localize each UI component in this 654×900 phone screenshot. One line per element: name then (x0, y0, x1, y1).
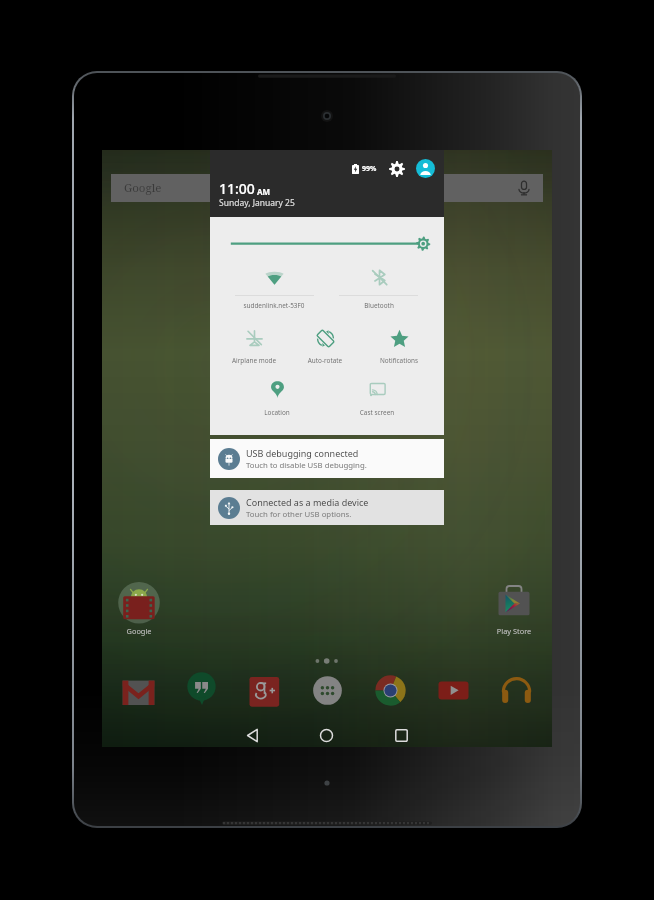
button[interactable]: Voice search (515, 179, 533, 197)
staticText: Play Store (493, 626, 535, 636)
button[interactable]: Auto-rotate (283, 329, 367, 373)
staticText: Google (118, 626, 160, 636)
staticText: suddenlink.net-53F0 (232, 301, 316, 310)
button[interactable]: User (416, 159, 435, 178)
staticText: Google (124, 180, 162, 196)
staticText: AM (257, 186, 271, 197)
staticText: USB debugging connected (246, 447, 359, 459)
button[interactable]: All apps (307, 670, 347, 710)
button[interactable]: Notifications (357, 329, 441, 373)
button[interactable]: Google (111, 174, 543, 202)
staticText: Sunday, January 25 (219, 197, 295, 209)
staticText: 99% (362, 164, 377, 174)
button[interactable]: Back (232, 714, 274, 756)
button[interactable]: suddenlink.net-53F0 (232, 268, 316, 318)
button[interactable]: Bluetooth (337, 268, 421, 318)
button[interactable]: Recent apps (380, 714, 422, 756)
button[interactable]: Home (305, 714, 347, 756)
button[interactable]: Settings (388, 160, 406, 178)
button[interactable]: Hangouts (181, 668, 221, 708)
button[interactable]: Google (118, 582, 160, 634)
staticText: Touch for other USB options. (246, 509, 352, 520)
staticText: 11:00 (219, 179, 255, 198)
staticText: Bluetooth (337, 301, 421, 310)
button[interactable]: Play Music (496, 670, 536, 710)
staticText: Location (235, 408, 319, 417)
staticText: Connected as a media device (246, 496, 369, 508)
staticText: Airplane mode (212, 356, 296, 365)
staticText: Cast screen (335, 408, 419, 417)
button[interactable]: Chrome (370, 670, 410, 710)
button[interactable]: Google Plus (244, 670, 284, 710)
button[interactable]: Airplane mode (212, 329, 296, 373)
staticText: Notifications (357, 356, 441, 365)
button[interactable]: Play Store (493, 582, 535, 634)
button[interactable]: USB debugging connected (210, 439, 444, 478)
staticText: Touch to disable USB debugging. (246, 460, 367, 471)
button[interactable]: YouTube (433, 670, 473, 710)
button[interactable]: Cast screen (335, 380, 419, 425)
button[interactable]: Location (235, 380, 319, 425)
staticText: Auto-rotate (283, 356, 367, 365)
button[interactable]: Gmail (118, 670, 158, 710)
button[interactable]: Connected as a media device (210, 490, 444, 525)
